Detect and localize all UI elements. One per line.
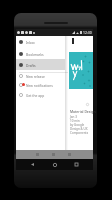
button[interactable]: Recents [71, 159, 82, 170]
button[interactable]: Home [49, 159, 60, 170]
staticText: New notifications [26, 83, 53, 87]
staticText: 12:30 [83, 30, 92, 35]
staticText: Components [70, 131, 89, 135]
staticText: by Google [70, 123, 85, 127]
button[interactable]: Inbox [16, 37, 65, 47]
staticText: Drafts [26, 63, 36, 67]
staticText: Material Design [70, 109, 96, 114]
button[interactable]: New notifications [16, 80, 65, 90]
button[interactable]: Back [27, 159, 38, 170]
staticText: 10 min [70, 119, 80, 123]
button[interactable]: Bookmarks [16, 49, 65, 59]
button[interactable]: Drafts [16, 60, 65, 70]
button[interactable]: Get the app [16, 90, 65, 100]
staticText: Inbox [26, 40, 35, 44]
staticText: Get the app [26, 93, 45, 97]
staticText: Bookmarks [26, 52, 44, 56]
staticText: New release [26, 74, 45, 78]
staticText: Design & UX [70, 127, 88, 131]
button[interactable]: New release [16, 71, 65, 81]
staticText: Jan 3 [70, 115, 77, 119]
